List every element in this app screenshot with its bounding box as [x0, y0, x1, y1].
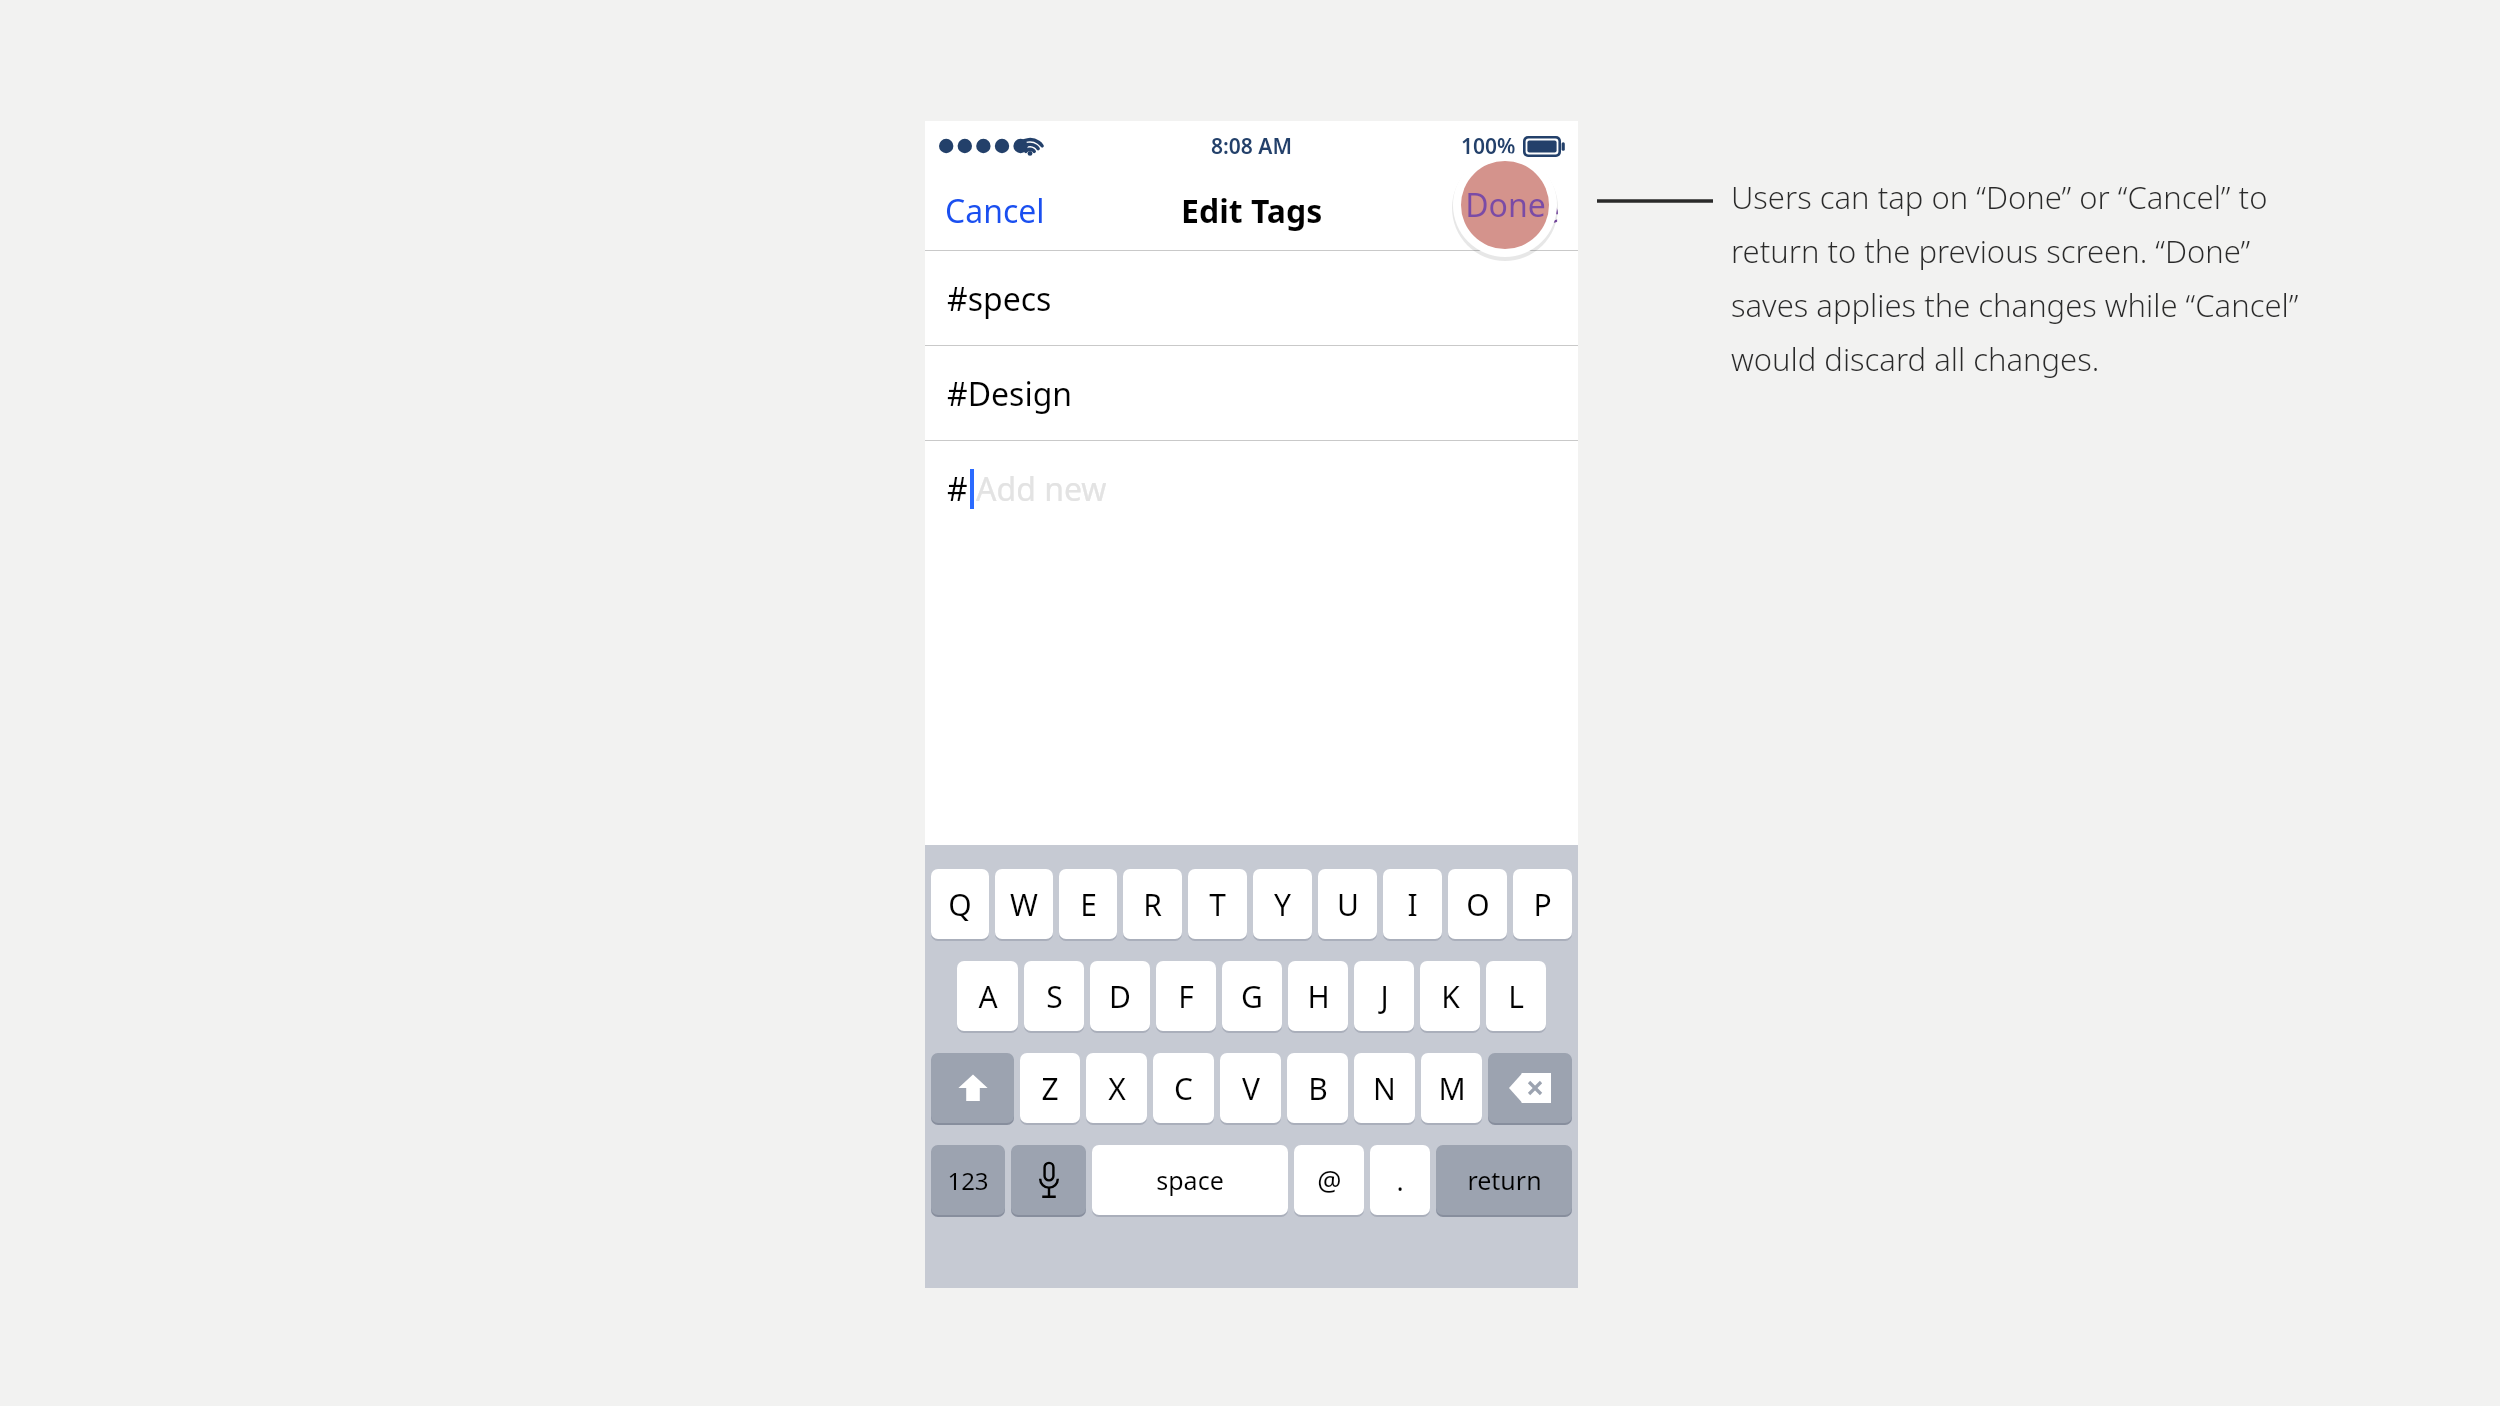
button[interactable]: Done	[1452, 152, 1558, 258]
staticText: #Design	[947, 372, 1073, 416]
button[interactable]: N	[1354, 1053, 1415, 1123]
button[interactable]: .	[1370, 1145, 1430, 1215]
button[interactable]: E	[1059, 869, 1117, 939]
staticText: Done	[1479, 189, 1560, 233]
button[interactable]: U	[1318, 869, 1377, 939]
button[interactable]: D	[1090, 961, 1150, 1031]
button[interactable]: R	[1123, 869, 1182, 939]
staticText: space	[1156, 1163, 1224, 1197]
staticText: X	[1108, 1068, 1126, 1109]
staticText: 123	[947, 1164, 989, 1197]
staticText: V	[1242, 1068, 1260, 1109]
staticText: Q	[948, 884, 972, 925]
button[interactable]: W	[995, 869, 1053, 939]
button[interactable]: Q	[931, 869, 989, 939]
button[interactable]: K	[1420, 961, 1480, 1031]
staticText: @	[1317, 1162, 1342, 1199]
button[interactable]: C	[1153, 1053, 1214, 1123]
staticText: #specs	[947, 277, 1052, 321]
staticText: S	[1046, 976, 1063, 1017]
staticText: D	[1109, 976, 1131, 1017]
staticText: C	[1174, 1068, 1193, 1109]
button[interactable]: G	[1222, 961, 1282, 1031]
staticText: N	[1373, 1068, 1396, 1109]
button[interactable]: J	[1354, 961, 1414, 1031]
button[interactable]: #	[925, 441, 1578, 536]
button[interactable]: O	[1448, 869, 1507, 939]
button[interactable]: A	[957, 961, 1018, 1031]
staticText: Y	[1274, 884, 1291, 925]
staticText: B	[1308, 1068, 1328, 1109]
button[interactable]: Z	[1020, 1053, 1080, 1123]
staticText: R	[1143, 884, 1162, 925]
staticText: A	[978, 976, 998, 1017]
staticText: 8:08 AM	[1211, 132, 1292, 161]
staticText: #	[947, 467, 968, 511]
button[interactable]: S	[1024, 961, 1084, 1031]
staticText: Add new	[976, 467, 1107, 511]
staticText: L	[1508, 976, 1524, 1017]
button[interactable]: F	[1156, 961, 1216, 1031]
staticText: M	[1438, 1068, 1466, 1109]
staticText: Z	[1041, 1068, 1059, 1109]
button[interactable]: @	[1294, 1145, 1364, 1215]
button[interactable]: T	[1188, 869, 1247, 939]
button[interactable]: Backspace	[1488, 1053, 1572, 1123]
button[interactable]: #specs	[925, 251, 1578, 346]
button[interactable]: B	[1287, 1053, 1348, 1123]
staticText: Done	[1465, 183, 1546, 227]
staticText: Cancel	[945, 189, 1045, 233]
staticText: Users can tap on “Done” or “Cancel” to r…	[1731, 176, 2331, 380]
staticText: G	[1241, 976, 1263, 1017]
staticText: .	[1396, 1162, 1404, 1199]
button[interactable]: Cancel	[925, 179, 1065, 243]
button[interactable]: Done	[1459, 179, 1578, 243]
staticText: W	[1010, 884, 1038, 925]
staticText: P	[1533, 884, 1552, 925]
staticText: I	[1407, 884, 1418, 925]
button[interactable]: V	[1220, 1053, 1281, 1123]
staticText: U	[1337, 884, 1359, 925]
button[interactable]: space	[1092, 1145, 1288, 1215]
staticText: T	[1209, 884, 1226, 925]
staticText: K	[1441, 976, 1460, 1017]
staticText: return	[1467, 1163, 1542, 1197]
button[interactable]: Shift	[931, 1053, 1014, 1123]
staticText: 100%	[1461, 132, 1516, 161]
staticText: O	[1466, 884, 1490, 925]
staticText: E	[1080, 884, 1097, 925]
button[interactable]: 123	[931, 1145, 1005, 1215]
button[interactable]: I	[1383, 869, 1442, 939]
button[interactable]: P	[1513, 869, 1572, 939]
staticText: Edit Tags	[1181, 189, 1323, 233]
button[interactable]: Y	[1253, 869, 1312, 939]
button[interactable]: X	[1086, 1053, 1147, 1123]
button[interactable]: L	[1486, 961, 1546, 1031]
button[interactable]: Dictate	[1011, 1145, 1086, 1215]
staticText: F	[1178, 976, 1194, 1017]
button[interactable]: H	[1288, 961, 1348, 1031]
staticText: H	[1307, 976, 1330, 1017]
staticText: J	[1380, 976, 1389, 1017]
button[interactable]: return	[1436, 1145, 1572, 1215]
button[interactable]: M	[1421, 1053, 1482, 1123]
button[interactable]: #Design	[925, 346, 1578, 441]
